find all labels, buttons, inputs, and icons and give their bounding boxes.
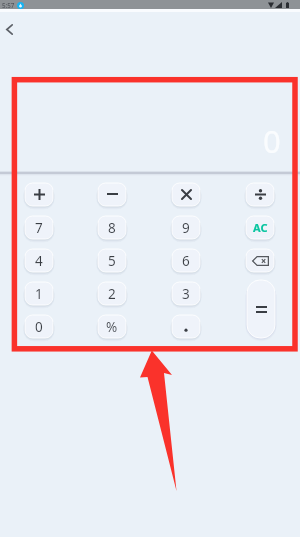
- staticText: 3: [182, 285, 190, 303]
- button[interactable]: Divide: [246, 181, 274, 208]
- button[interactable]: Equals: [247, 280, 275, 338]
- other: Plus: [34, 189, 45, 200]
- button[interactable]: 3: [172, 280, 200, 307]
- staticText: 8: [108, 219, 116, 237]
- button[interactable]: Back: [0, 16, 22, 42]
- staticText: 4: [35, 252, 43, 270]
- staticText: 9: [182, 219, 190, 237]
- staticText: 6: [182, 252, 190, 270]
- button[interactable]: 9: [172, 214, 200, 241]
- other: Backspace: [252, 256, 269, 266]
- other: Equals: [256, 306, 267, 313]
- button[interactable]: 6: [172, 247, 200, 274]
- staticText: 2: [108, 285, 116, 303]
- button[interactable]: 4: [25, 247, 53, 274]
- button[interactable]: [172, 313, 200, 340]
- staticText: 1: [35, 285, 43, 303]
- staticText: 5: [108, 252, 116, 270]
- staticText: 7: [35, 219, 43, 237]
- other: Minus: [107, 193, 118, 196]
- staticText: 0: [35, 318, 43, 336]
- staticText: AC: [253, 220, 268, 235]
- button[interactable]: Plus: [25, 181, 53, 208]
- button[interactable]: 5: [98, 247, 126, 274]
- button[interactable]: Backspace: [246, 247, 274, 274]
- staticText: 5:57: [2, 1, 15, 9]
- button[interactable]: 1: [25, 280, 53, 307]
- other: Divide: [255, 189, 266, 200]
- button[interactable]: 7: [25, 214, 53, 241]
- button[interactable]: 2: [98, 280, 126, 307]
- other: Multiply: [182, 190, 191, 199]
- button[interactable]: Multiply: [172, 181, 200, 208]
- button[interactable]: Minus: [98, 181, 126, 208]
- staticText: %: [106, 318, 118, 336]
- staticText: 0: [263, 120, 281, 162]
- button[interactable]: 0: [25, 313, 53, 340]
- button[interactable]: 8: [98, 214, 126, 241]
- button[interactable]: All clear: [246, 214, 274, 241]
- button[interactable]: %: [98, 313, 126, 340]
